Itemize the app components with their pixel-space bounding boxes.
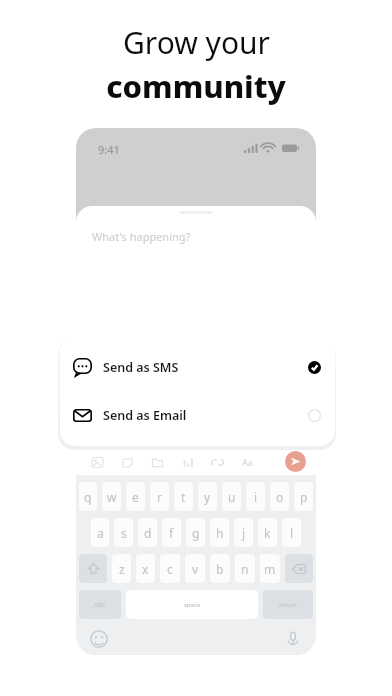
button[interactable]: n [235, 554, 255, 583]
staticText: s [121, 525, 127, 541]
staticText: q [84, 489, 92, 505]
staticText: return [279, 601, 297, 609]
button[interactable]: g [186, 518, 205, 547]
staticText: j [242, 525, 246, 541]
staticText: ABC [94, 601, 106, 609]
staticText: What's happening? [92, 229, 191, 244]
button[interactable]: c [160, 554, 180, 583]
button[interactable]: a [91, 518, 109, 547]
button[interactable]: Backspace [285, 554, 313, 583]
staticText: h [216, 525, 224, 541]
button[interactable]: Dictation [282, 628, 304, 650]
button[interactable]: Link [206, 451, 228, 473]
button[interactable]: s [114, 518, 133, 547]
staticText: space [184, 601, 201, 609]
staticText: z [119, 561, 125, 577]
button[interactable]: d [138, 518, 157, 547]
staticText: l [290, 525, 294, 541]
button[interactable]: Image [86, 451, 108, 473]
button[interactable]: ABC [79, 590, 121, 619]
button[interactable]: return [263, 590, 313, 619]
button[interactable]: j [234, 518, 253, 547]
button[interactable]: y [198, 482, 217, 511]
staticText: Send as SMS [103, 359, 179, 376]
staticText: b [216, 561, 224, 577]
button[interactable]: u [222, 482, 241, 511]
button[interactable]: p [294, 482, 313, 511]
staticText: u [228, 489, 236, 505]
staticText: r [157, 489, 162, 505]
staticText: f [169, 525, 174, 541]
staticText: o [276, 489, 284, 505]
button[interactable]: Shift [79, 554, 107, 583]
button[interactable]: q [79, 482, 97, 511]
staticText: e [132, 489, 139, 505]
button[interactable]: i [246, 482, 265, 511]
button[interactable]: h [210, 518, 229, 547]
button[interactable]: m [260, 554, 280, 583]
button[interactable]: z [112, 554, 131, 583]
button[interactable]: o [270, 482, 289, 511]
button[interactable]: Format [236, 451, 258, 473]
staticText: k [264, 525, 271, 541]
button[interactable]: Folder [146, 451, 168, 473]
button[interactable]: r [150, 482, 169, 511]
staticText: p [300, 489, 308, 505]
button[interactable]: Send as Email [60, 396, 335, 434]
staticText: i [254, 489, 258, 505]
staticText: x [142, 561, 149, 577]
button[interactable]: v [185, 554, 205, 583]
button[interactable]: Send as SMS [60, 348, 335, 386]
button[interactable]: e [126, 482, 145, 511]
staticText: g [192, 525, 200, 541]
staticText: Send as Email [103, 407, 187, 424]
button[interactable]: b [210, 554, 230, 583]
staticText: Grow your [123, 22, 270, 63]
staticText: community [106, 65, 286, 107]
button[interactable]: Emoji [88, 628, 110, 650]
button[interactable]: Poll [176, 451, 198, 473]
staticText: v [192, 561, 199, 577]
staticText: w [107, 489, 117, 505]
staticText: c [167, 561, 173, 577]
button[interactable]: x [136, 554, 155, 583]
button[interactable]: l [282, 518, 301, 547]
staticText: m [264, 561, 276, 577]
staticText: Aa [242, 456, 253, 468]
button[interactable]: k [258, 518, 277, 547]
button[interactable]: Send [285, 451, 306, 472]
button[interactable]: t [174, 482, 193, 511]
staticText: 9:41 [98, 142, 120, 157]
button[interactable]: w [102, 482, 121, 511]
button[interactable]: Sticker [116, 451, 138, 473]
staticText: y [204, 489, 211, 505]
staticText: n [241, 561, 249, 577]
button[interactable]: f [162, 518, 181, 547]
button[interactable]: space [126, 590, 258, 619]
staticText: d [144, 525, 152, 541]
staticText: a [97, 525, 104, 541]
staticText: t [181, 489, 186, 505]
